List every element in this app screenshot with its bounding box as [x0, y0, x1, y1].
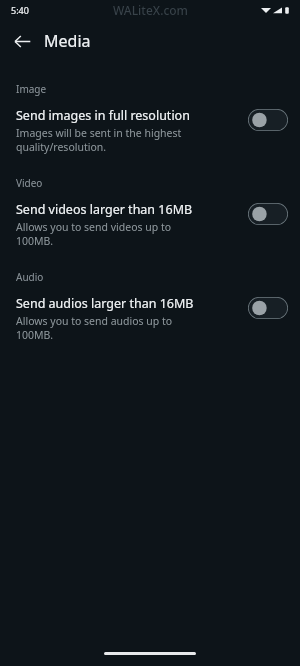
staticText: Images will be sent in the highest quali… — [16, 126, 182, 154]
button[interactable]: Toggle off — [248, 203, 288, 225]
staticText: Media — [44, 30, 91, 52]
staticText: Allows you to send audios up to 100MB. — [16, 314, 173, 342]
staticText: 5:40 — [11, 4, 29, 16]
staticText: Send images in full resolution — [16, 107, 190, 124]
button[interactable]: Toggle off — [248, 109, 288, 131]
button[interactable]: Send audios larger than 16MB — [0, 292, 300, 348]
button[interactable]: Back — [5, 24, 39, 58]
button[interactable]: Send videos larger than 16MB — [0, 198, 300, 254]
staticText: WALiteX.com — [113, 2, 188, 18]
staticText: Video — [16, 176, 43, 190]
staticText: Allows you to send videos up to 100MB. — [16, 220, 172, 248]
button[interactable]: Send images in full resolution — [0, 104, 300, 160]
staticText: Send audios larger than 16MB — [16, 295, 194, 312]
button[interactable]: Toggle off — [248, 297, 288, 319]
staticText: Image — [16, 82, 47, 96]
staticText: Send videos larger than 16MB — [16, 201, 193, 218]
staticText: Audio — [16, 270, 44, 284]
